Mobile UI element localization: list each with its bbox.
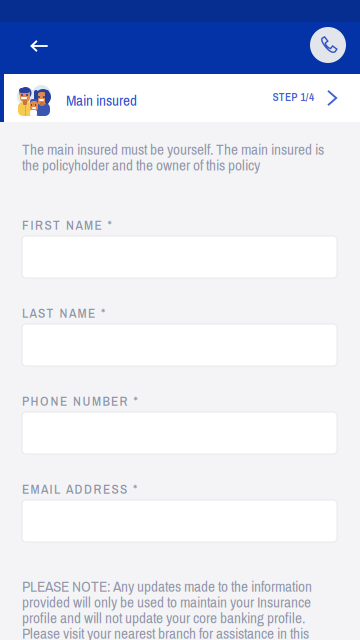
staticText: Main insured	[66, 90, 137, 111]
button[interactable]: Back	[18, 24, 62, 68]
button[interactable]: Call	[310, 27, 346, 63]
staticText: The main insured must be yourself. The m…	[22, 139, 324, 175]
staticText: PLEASE NOTE: Any updates made to the inf…	[22, 576, 312, 640]
staticText: STEP 1/4	[273, 89, 314, 105]
staticText: EMAIL ADDRESS *	[22, 480, 137, 498]
staticText: FIRST NAME *	[22, 216, 111, 234]
staticText: LAST NAME *	[22, 304, 105, 322]
staticText: PHONE NUMBER *	[22, 392, 137, 410]
button[interactable]: Main insured	[4, 74, 360, 122]
